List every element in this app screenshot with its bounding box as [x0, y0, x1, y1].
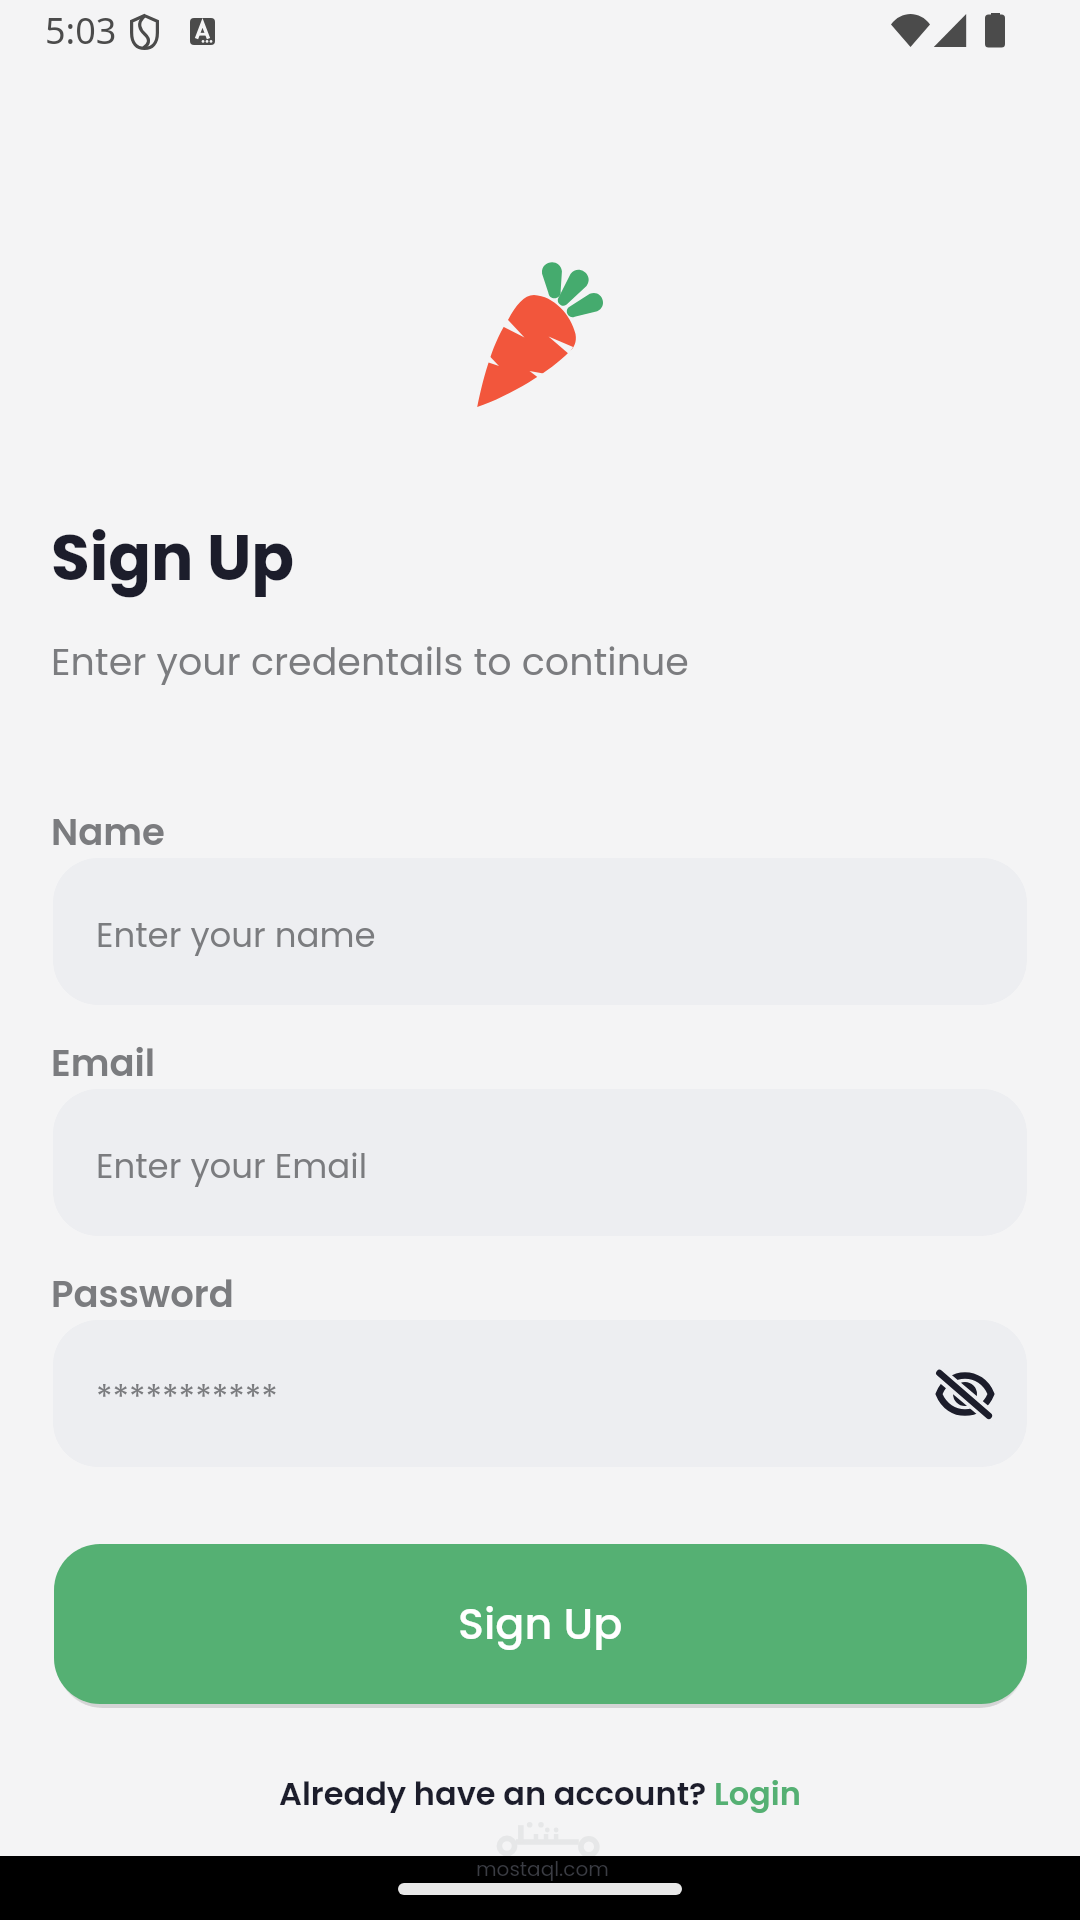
button[interactable]: ***********	[53, 1320, 1027, 1467]
button[interactable]: Show password	[925, 1354, 1005, 1434]
button[interactable]: Enter your Email	[53, 1089, 1027, 1236]
staticText: Password	[51, 1268, 234, 1320]
staticText: ***********	[96, 1373, 278, 1421]
staticText: Enter your credentails to continue	[51, 635, 689, 688]
button[interactable]: Enter your name	[53, 858, 1027, 1005]
staticText: mostaql.com	[476, 1855, 609, 1883]
staticText: Sign Up	[51, 514, 295, 602]
staticText: Email	[51, 1037, 156, 1089]
button[interactable]: Login	[714, 1771, 801, 1816]
staticText: Already have an account?	[279, 1771, 714, 1816]
staticText: Enter your Email	[96, 1142, 368, 1190]
staticText: Name	[51, 806, 165, 858]
staticText: Enter your name	[96, 911, 376, 959]
staticText: 5:03	[45, 6, 117, 55]
staticText: Sign Up	[458, 1594, 623, 1654]
button[interactable]: Sign Up	[54, 1544, 1027, 1704]
